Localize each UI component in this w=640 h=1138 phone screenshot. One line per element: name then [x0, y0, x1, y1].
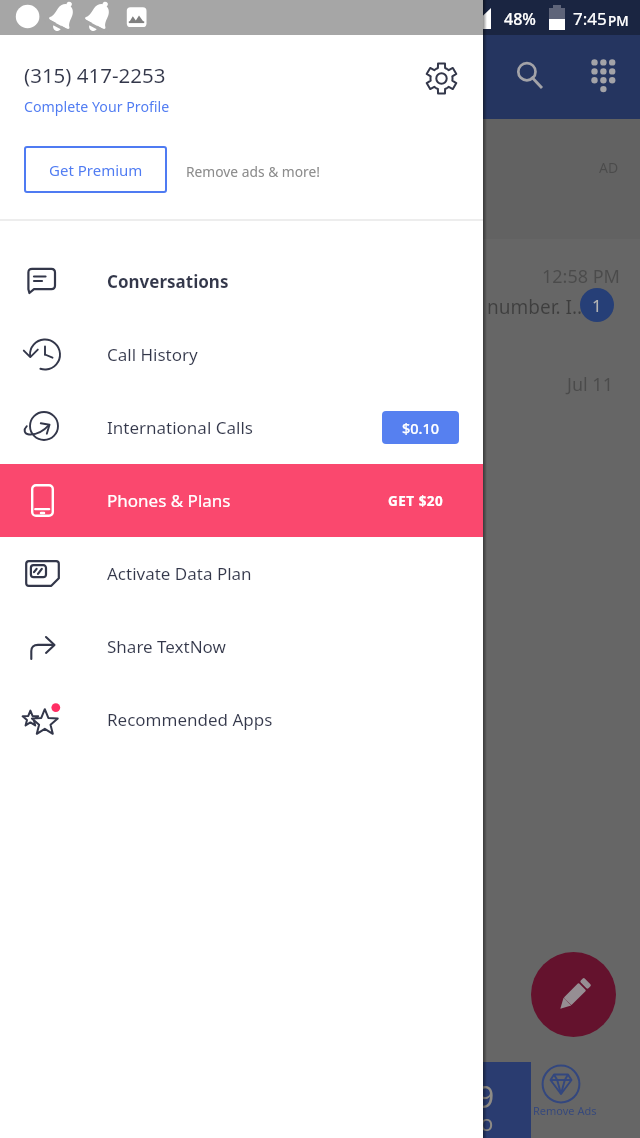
staticText: Activate Data Plan: [107, 562, 483, 585]
staticText: 12:58 PM: [542, 264, 620, 289]
staticText: AD: [599, 158, 619, 177]
staticText: 48%: [504, 8, 536, 30]
staticText: number. I..: [487, 294, 583, 320]
staticText: o: [480, 1107, 494, 1137]
staticText: PM: [608, 12, 629, 30]
staticText: 7:45: [573, 7, 607, 30]
button[interactable]: Recommended Apps: [0, 683, 483, 756]
button[interactable]: International Calls: [0, 391, 483, 464]
button[interactable]: Dial pad: [579, 53, 627, 101]
button[interactable]: Phones & Plans: [0, 464, 483, 537]
button[interactable]: Remove Ads: [533, 1060, 640, 1138]
button[interactable]: Conversations: [0, 245, 483, 318]
button[interactable]: Compose new message: [531, 952, 616, 1037]
button[interactable]: Activate Data Plan: [0, 537, 483, 610]
staticText: Remove ads & more!: [186, 162, 320, 181]
staticText: (315) 417-2253: [24, 61, 166, 89]
button[interactable]: Call History: [0, 318, 483, 391]
staticText: GET $20: [388, 492, 444, 510]
staticText: Phones & Plans: [107, 489, 388, 512]
staticText: Remove Ads: [533, 1103, 597, 1118]
staticText: 1: [592, 294, 602, 317]
button[interactable]: Settings: [419, 56, 463, 100]
staticText: Recommended Apps: [107, 708, 483, 731]
staticText: Get Premium: [49, 160, 143, 180]
staticText: Conversations: [107, 270, 483, 293]
staticText: International Calls: [107, 416, 382, 439]
button[interactable]: Share TextNow: [0, 610, 483, 683]
staticText: 9: [477, 1076, 495, 1117]
staticText: Share TextNow: [107, 635, 483, 658]
button[interactable]: Search: [505, 53, 553, 101]
staticText: Call History: [107, 343, 483, 366]
staticText: Jul 11: [567, 372, 613, 397]
staticText: Complete Your Profile: [24, 97, 170, 116]
button[interactable]: Get Premium: [24, 146, 167, 193]
staticText: $0.10: [402, 418, 440, 438]
